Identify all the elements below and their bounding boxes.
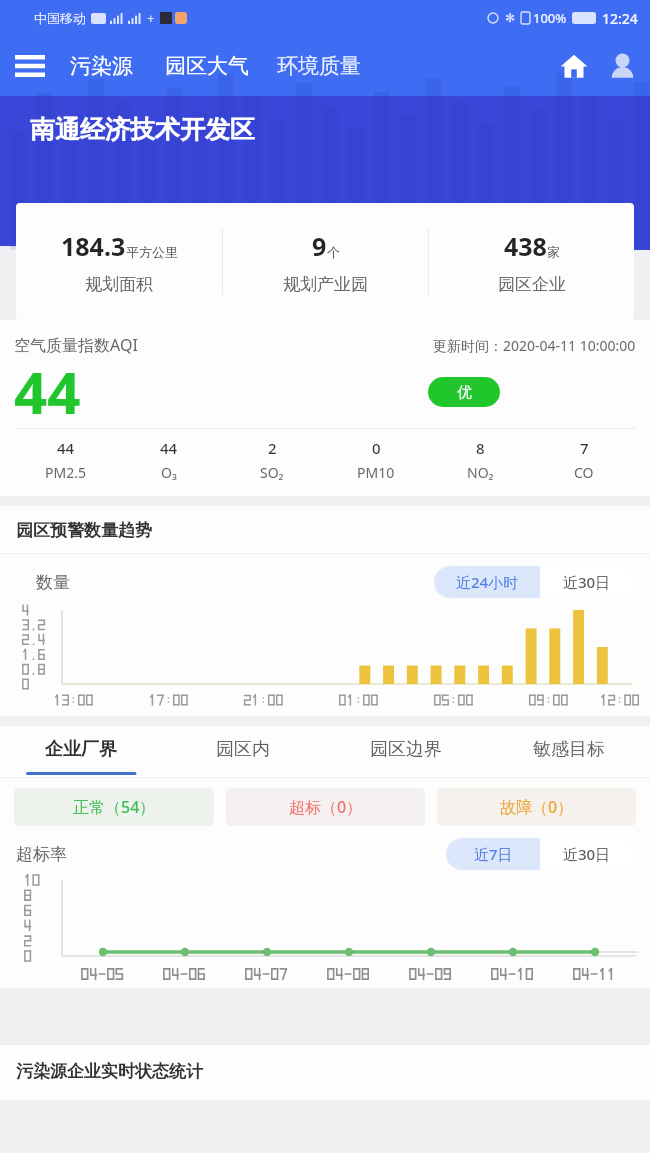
staticText: 0: [372, 438, 381, 458]
staticText: 敏感目标: [533, 738, 605, 761]
staticText: 企业厂界: [45, 738, 117, 761]
staticText: 中国移动: [34, 10, 86, 26]
staticText: 污染源: [70, 53, 133, 79]
button[interactable]: 近30日: [540, 838, 634, 870]
staticText: 44: [57, 438, 75, 458]
staticText: 南通经济技术开发区: [30, 114, 255, 145]
staticText: 超标（0）: [289, 796, 363, 818]
staticText: 数量: [36, 572, 70, 593]
button[interactable]: 优: [428, 377, 500, 407]
staticText: 2: [268, 438, 277, 458]
staticText: 8: [476, 438, 485, 458]
staticText: 环境质量: [277, 53, 361, 79]
staticText: 规划面积: [85, 274, 153, 295]
staticText: 更新时间：2020-04-11 10:00:00: [433, 336, 636, 355]
staticText: 优: [457, 383, 472, 402]
staticText: 438: [504, 229, 547, 263]
staticText: +: [147, 9, 155, 27]
staticText: 184.3: [61, 229, 126, 263]
button[interactable]: 近24小时: [434, 566, 540, 598]
staticText: 44: [160, 438, 178, 458]
button[interactable]: 环境质量: [269, 53, 369, 79]
staticText: 园区内: [216, 738, 270, 761]
staticText: 正常（54）: [73, 796, 156, 818]
button[interactable]: 企业厂界: [0, 726, 162, 772]
staticText: PM2.5: [45, 463, 86, 482]
staticText: 近30日: [563, 572, 611, 592]
staticText: 超标率: [16, 844, 67, 865]
button[interactable]: 污染源: [60, 53, 143, 79]
staticText: CO: [574, 463, 594, 482]
staticText: 近30日: [563, 844, 611, 864]
staticText: O₃: [161, 463, 177, 482]
staticText: 100%: [533, 9, 567, 27]
staticText: 规划产业园: [283, 274, 368, 295]
button[interactable]: 园区内: [162, 726, 324, 772]
staticText: 空气质量指数AQI: [14, 334, 138, 356]
staticText: 污染源企业实时状态统计: [16, 1061, 203, 1082]
staticText: 园区预警数量趋势: [16, 520, 152, 541]
staticText: 园区企业: [498, 274, 566, 295]
staticText: 园区大气: [165, 53, 249, 79]
staticText: 44: [14, 352, 81, 424]
staticText: 近24小时: [456, 572, 519, 592]
button[interactable]: 近30日: [540, 566, 634, 598]
staticText: PM10: [357, 463, 395, 482]
staticText: NO₂: [467, 463, 494, 482]
staticText: 园区边界: [370, 738, 442, 761]
staticText: 9: [312, 229, 327, 263]
staticText: ✻: [505, 11, 516, 25]
button[interactable]: Profile: [598, 42, 646, 90]
button[interactable]: 超标（0）: [226, 788, 425, 826]
staticText: 个: [327, 244, 340, 260]
staticText: 家: [547, 244, 560, 260]
button[interactable]: 园区边界: [324, 726, 487, 772]
button[interactable]: 敏感目标: [487, 726, 650, 772]
staticText: 7: [580, 438, 589, 458]
button[interactable]: 园区大气: [155, 53, 259, 79]
button[interactable]: Menu: [0, 36, 60, 96]
staticText: 平方公里: [126, 244, 178, 260]
staticText: SO₂: [260, 463, 284, 482]
staticText: 12:24: [602, 9, 638, 28]
button[interactable]: Home: [550, 42, 598, 90]
staticText: 故障（0）: [500, 796, 574, 818]
button[interactable]: 近7日: [446, 838, 540, 870]
staticText: 近7日: [474, 844, 513, 864]
button[interactable]: 正常（54）: [14, 788, 214, 826]
button[interactable]: 故障（0）: [437, 788, 636, 826]
